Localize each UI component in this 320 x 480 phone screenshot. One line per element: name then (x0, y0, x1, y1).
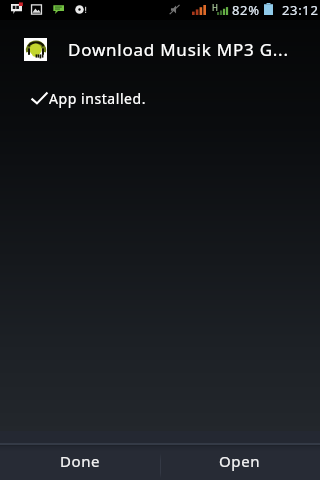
staticText: 82% (232, 1, 260, 19)
staticText: H (212, 2, 218, 13)
staticText: App installed. (49, 89, 147, 108)
staticText: Open (219, 451, 261, 471)
staticText: Download Musik MP3 G... (68, 38, 289, 61)
staticText: Done (60, 451, 101, 471)
staticText: 23:12 (282, 1, 319, 19)
button[interactable]: Done (0, 446, 160, 480)
button[interactable]: Open (160, 446, 320, 480)
